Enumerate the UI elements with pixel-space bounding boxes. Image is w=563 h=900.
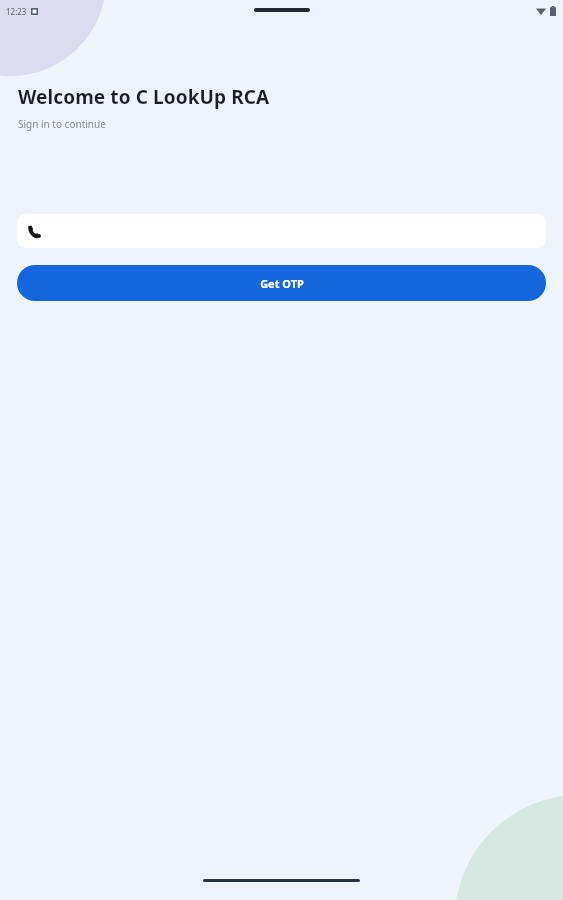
- staticText: Welcome to C LookUp RCA: [18, 84, 270, 110]
- staticText: Get OTP: [260, 276, 304, 291]
- staticText: Sign in to continue: [18, 117, 106, 131]
- button[interactable]: Phone number input: [17, 214, 546, 248]
- button[interactable]: Get OTP: [17, 265, 546, 301]
- staticText: 12:23: [6, 6, 27, 17]
